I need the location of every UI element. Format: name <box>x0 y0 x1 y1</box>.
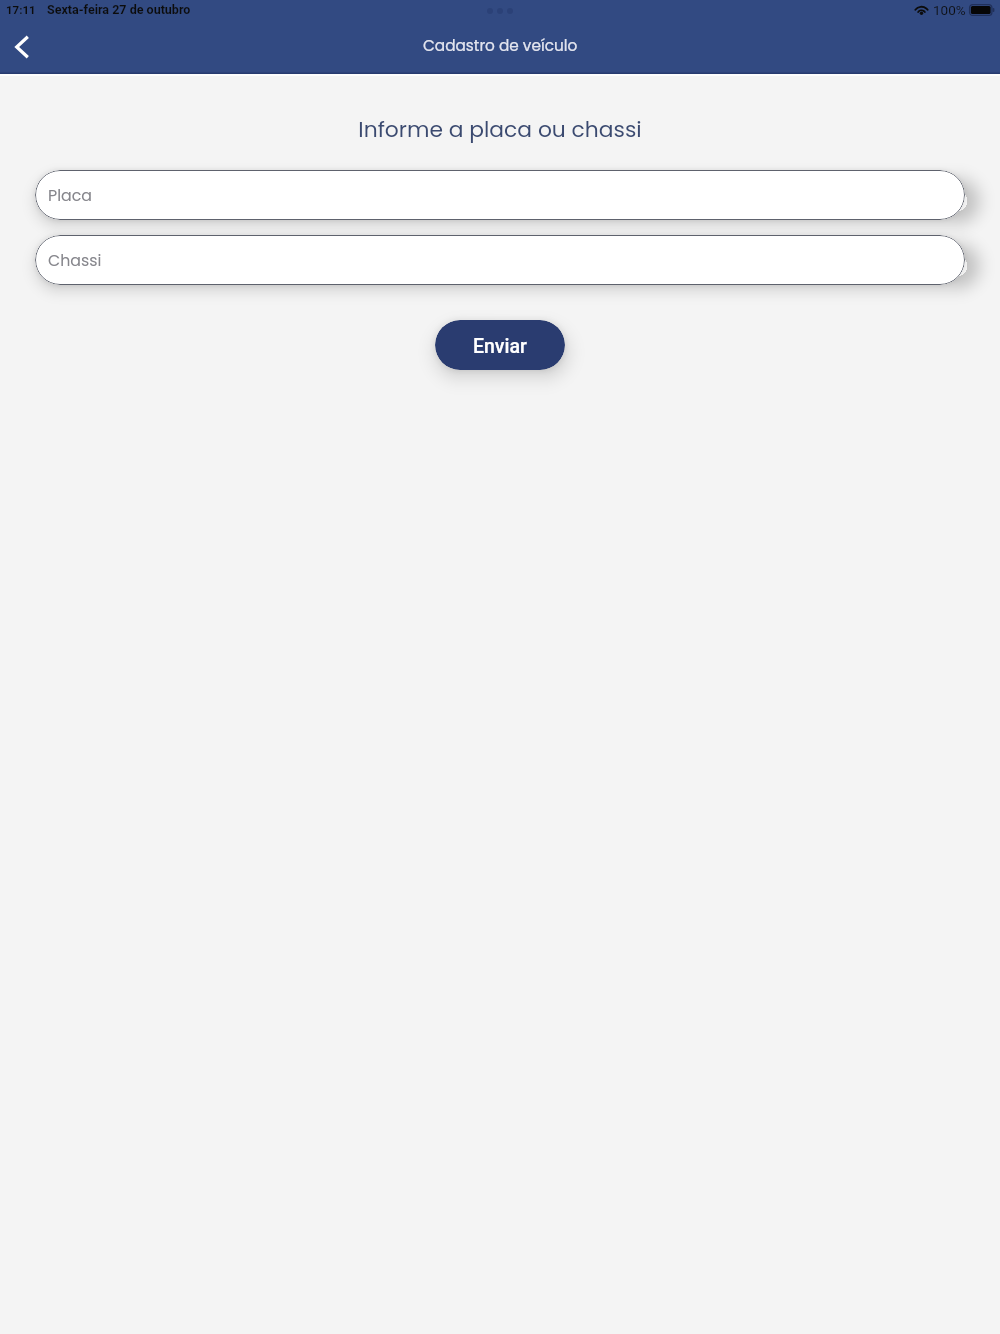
staticText: Enviar <box>473 335 527 358</box>
button[interactable]: Voltar <box>0 21 47 72</box>
button[interactable]: Enviar <box>435 320 565 370</box>
staticText: Cadastro de veículo <box>423 35 578 56</box>
button[interactable]: Chassi <box>35 235 965 285</box>
staticText: Chassi <box>48 249 102 271</box>
button[interactable]: Placa <box>35 170 965 220</box>
staticText: Sexta-feira 27 de outubro <box>47 2 191 17</box>
staticText: 100% <box>933 2 966 18</box>
staticText: 17:11 <box>6 3 36 16</box>
staticText: Placa <box>48 184 92 206</box>
staticText: Informe a placa ou chassi <box>0 114 1000 145</box>
